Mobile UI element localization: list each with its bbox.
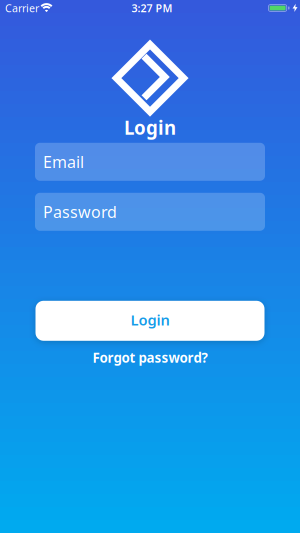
staticText: Password	[43, 201, 117, 222]
staticText: Email	[43, 151, 84, 172]
staticText: 3:27 PM	[131, 1, 172, 15]
button[interactable]: Login	[35, 301, 264, 341]
staticText: Carrier	[5, 1, 39, 15]
button[interactable]: Forgot password?	[92, 349, 207, 366]
staticText: Login	[124, 115, 176, 140]
button[interactable]: Password	[35, 193, 265, 231]
staticText: Login	[130, 310, 169, 330]
staticText: Forgot password?	[92, 349, 207, 366]
button[interactable]: Email	[35, 143, 265, 181]
